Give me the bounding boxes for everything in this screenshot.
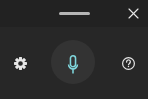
button[interactable]: Microphone <box>51 40 95 84</box>
button[interactable]: Close <box>121 1 145 25</box>
button[interactable]: Help <box>117 52 140 75</box>
button[interactable]: Settings <box>9 52 32 75</box>
